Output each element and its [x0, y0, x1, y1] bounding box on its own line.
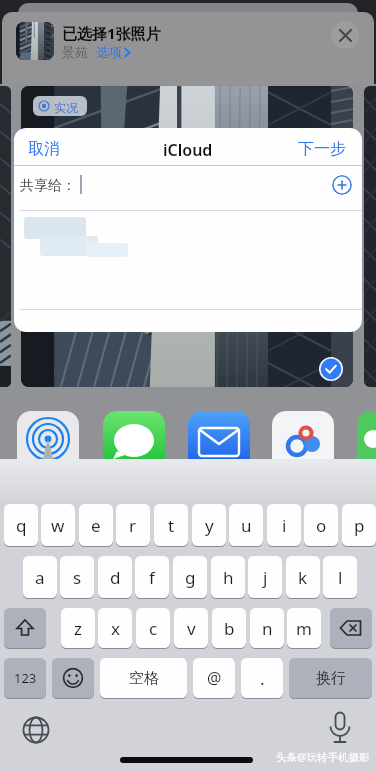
- button[interactable]: 下一步: [298, 139, 346, 159]
- staticText: @: [207, 667, 222, 689]
- staticText: 取消: [28, 139, 60, 159]
- staticText: j: [263, 566, 268, 589]
- button[interactable]: [4, 608, 46, 648]
- button[interactable]: 空格: [100, 658, 187, 698]
- staticText: u: [241, 514, 252, 537]
- button[interactable]: [328, 711, 352, 747]
- button[interactable]: y: [192, 504, 226, 546]
- button[interactable]: [103, 411, 165, 473]
- staticText: b: [224, 617, 235, 640]
- button[interactable]: o: [304, 504, 338, 546]
- staticText: k: [298, 566, 308, 589]
- button[interactable]: [332, 175, 352, 195]
- button[interactable]: j: [248, 556, 282, 598]
- staticText: m: [296, 617, 312, 640]
- button[interactable]: c: [136, 608, 170, 648]
- button[interactable]: z: [61, 608, 95, 648]
- button[interactable]: k: [286, 556, 320, 598]
- button[interactable]: w: [41, 504, 75, 546]
- button[interactable]: f: [135, 556, 169, 598]
- staticText: d: [110, 566, 121, 589]
- button[interactable]: 选项: [96, 44, 132, 60]
- staticText: f: [149, 566, 155, 589]
- staticText: 头条@玩转手机摄影: [276, 750, 370, 764]
- staticText: g: [185, 566, 196, 589]
- staticText: n: [262, 617, 273, 640]
- button[interactable]: q: [4, 504, 38, 546]
- staticText: 123: [14, 669, 37, 687]
- staticText: a: [35, 566, 45, 589]
- staticText: 共享给：: [20, 177, 76, 195]
- button[interactable]: b: [212, 608, 246, 648]
- staticText: e: [91, 514, 101, 537]
- staticText: o: [316, 514, 327, 537]
- button[interactable]: .: [241, 658, 283, 698]
- staticText: 已选择1张照片: [62, 23, 161, 43]
- button[interactable]: v: [174, 608, 208, 648]
- button[interactable]: l: [323, 556, 357, 598]
- button[interactable]: 换行: [289, 658, 372, 698]
- staticText: y: [205, 514, 214, 537]
- button[interactable]: e: [79, 504, 113, 546]
- staticText: 下一步: [298, 139, 346, 159]
- button[interactable]: t: [154, 504, 188, 546]
- button[interactable]: [331, 21, 359, 49]
- button[interactable]: p: [342, 504, 376, 546]
- staticText: i: [282, 514, 287, 537]
- button[interactable]: u: [229, 504, 263, 546]
- button[interactable]: m: [287, 608, 321, 648]
- staticText: z: [74, 617, 82, 640]
- button[interactable]: @: [193, 658, 235, 698]
- staticText: .: [260, 667, 265, 690]
- button[interactable]: h: [211, 556, 245, 598]
- button[interactable]: x: [98, 608, 132, 648]
- button[interactable]: [17, 411, 79, 473]
- button[interactable]: 123: [4, 658, 46, 698]
- staticText: 实况: [54, 100, 78, 115]
- staticText: r: [129, 514, 137, 537]
- staticText: 换行: [316, 669, 346, 688]
- button[interactable]: [52, 658, 94, 698]
- staticText: t: [168, 514, 175, 537]
- staticText: p: [354, 514, 365, 537]
- staticText: iCloud: [163, 139, 213, 161]
- button[interactable]: d: [98, 556, 132, 598]
- button[interactable]: s: [60, 556, 94, 598]
- button[interactable]: [330, 608, 372, 648]
- staticText: 选项: [96, 44, 122, 60]
- button[interactable]: g: [173, 556, 207, 598]
- staticText: s: [73, 566, 82, 589]
- staticText: h: [223, 566, 234, 589]
- staticText: x: [111, 617, 120, 640]
- staticText: l: [338, 566, 343, 589]
- button[interactable]: [21, 86, 353, 387]
- staticText: q: [16, 514, 27, 537]
- staticText: 空格: [129, 669, 159, 688]
- staticText: v: [187, 617, 196, 640]
- staticText: 景苑: [62, 44, 88, 60]
- button[interactable]: i: [267, 504, 301, 546]
- button[interactable]: a: [23, 556, 57, 598]
- button[interactable]: [357, 411, 376, 473]
- button[interactable]: [22, 716, 50, 744]
- button[interactable]: r: [116, 504, 150, 546]
- button[interactable]: 取消: [28, 139, 60, 159]
- staticText: c: [149, 617, 158, 640]
- staticText: w: [51, 514, 65, 537]
- button[interactable]: n: [250, 608, 284, 648]
- button[interactable]: [188, 411, 250, 473]
- button[interactable]: [272, 411, 334, 473]
